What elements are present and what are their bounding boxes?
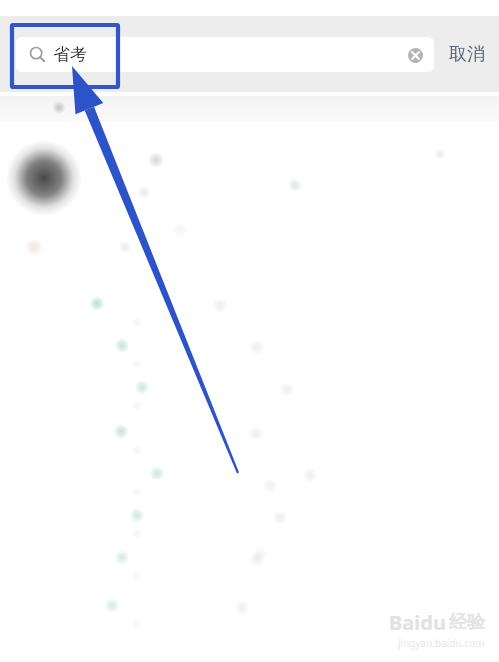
staticText: jingyan.baidu.com (398, 636, 485, 650)
button[interactable]: 省考 (16, 37, 434, 72)
staticText: 经验 (449, 611, 485, 634)
staticText: Baidu (389, 609, 446, 636)
staticText: 省考 (53, 44, 87, 65)
staticText: 取消 (449, 43, 485, 66)
button[interactable]: 取消 (438, 16, 496, 92)
button[interactable]: Clear search text (404, 44, 426, 66)
